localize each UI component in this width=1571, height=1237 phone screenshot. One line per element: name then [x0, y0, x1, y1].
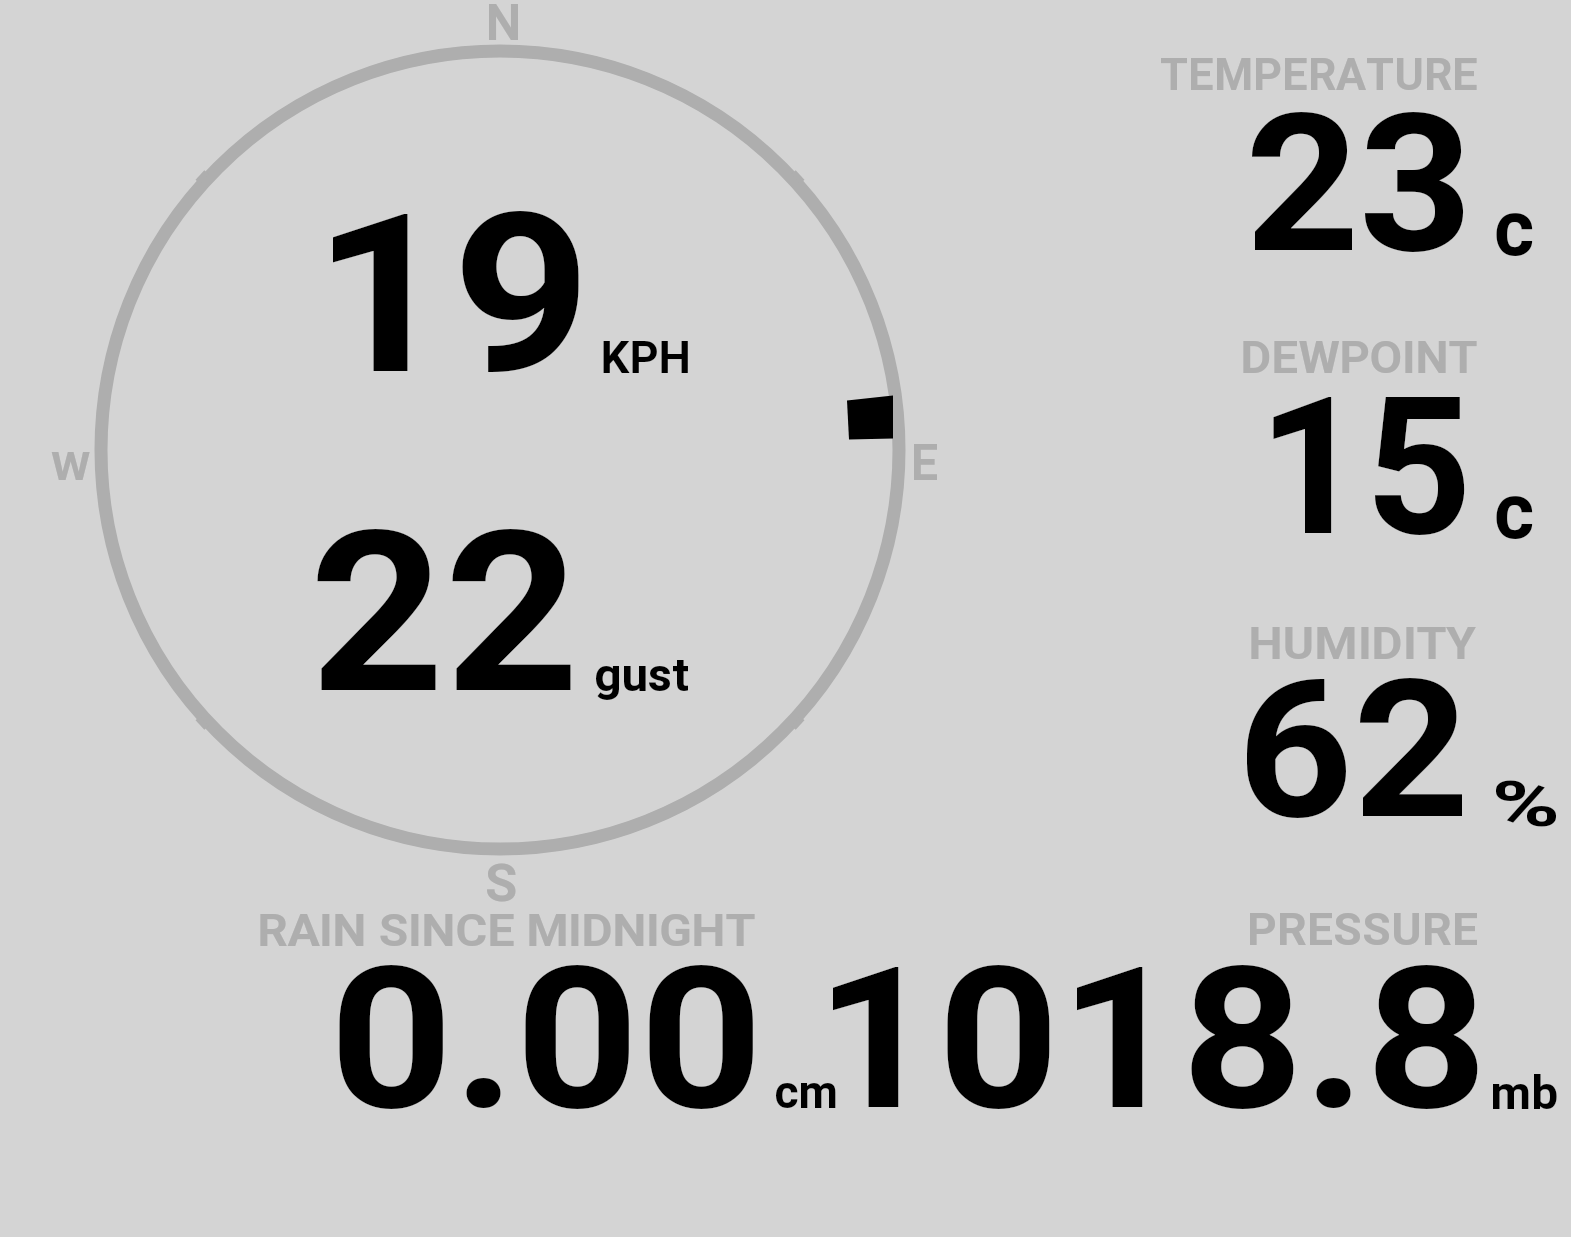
- button[interactable]: DEWPOINT 15 c: [1060, 305, 1571, 590]
- button[interactable]: TEMPERATURE 23 c: [1060, 20, 1571, 305]
- button[interactable]: RAIN SINCE MIDNIGHT 0.00 cm: [230, 890, 830, 1130]
- button[interactable]: HUMIDITY 62 %: [1060, 590, 1571, 880]
- button[interactable]: Wind 19 KPH gusting 22, direction east: [0, 0, 1040, 890]
- button[interactable]: PRESSURE 1018.8 mb: [830, 890, 1571, 1130]
